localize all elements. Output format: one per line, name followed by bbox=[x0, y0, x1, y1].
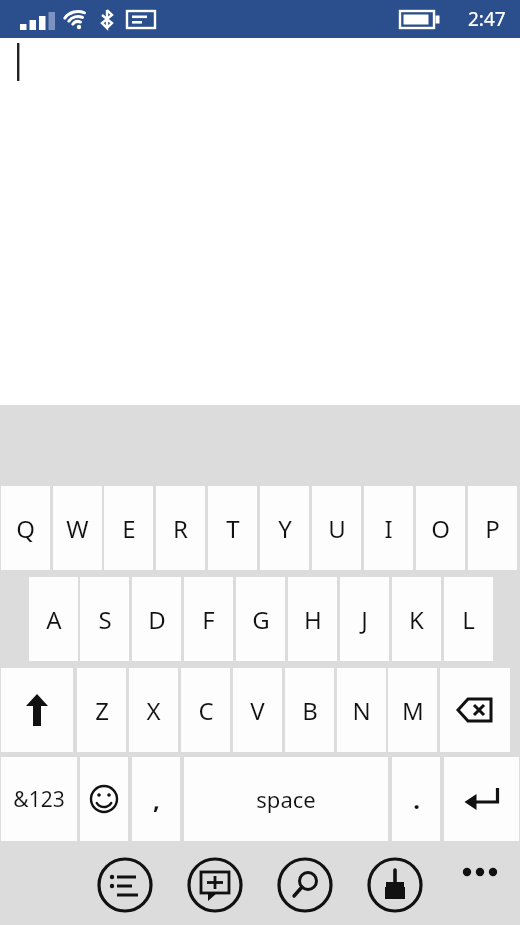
staticText: S bbox=[98, 603, 112, 636]
staticText: A bbox=[46, 603, 62, 636]
button[interactable]: C bbox=[181, 668, 230, 752]
staticText: space bbox=[256, 784, 316, 814]
button[interactable]: A bbox=[29, 577, 78, 661]
staticText: R bbox=[173, 512, 188, 545]
staticText: O bbox=[431, 512, 450, 545]
staticText: 2:47 bbox=[468, 6, 506, 32]
staticText: Z bbox=[95, 694, 109, 727]
button[interactable]: Backspace bbox=[440, 668, 510, 752]
staticText: N bbox=[352, 694, 371, 727]
staticText: Q bbox=[16, 512, 35, 545]
staticText: D bbox=[148, 603, 166, 636]
staticText: X bbox=[146, 694, 161, 727]
button[interactable]: M bbox=[388, 668, 437, 752]
button[interactable]: space bbox=[184, 757, 388, 841]
button[interactable]: R bbox=[156, 486, 205, 570]
button[interactable]: J bbox=[340, 577, 389, 661]
button[interactable]: B bbox=[285, 668, 334, 752]
button[interactable]: H bbox=[288, 577, 337, 661]
button[interactable]: S bbox=[80, 577, 129, 661]
button[interactable]: I bbox=[364, 486, 413, 570]
button[interactable]: X bbox=[129, 668, 178, 752]
button[interactable]: L bbox=[444, 577, 493, 661]
button[interactable]: Add word bbox=[187, 857, 243, 913]
button[interactable]: P bbox=[468, 486, 517, 570]
button[interactable]: More options bbox=[452, 857, 508, 913]
staticText: P bbox=[485, 512, 500, 545]
button[interactable]: Y bbox=[260, 486, 309, 570]
button[interactable]: N bbox=[337, 668, 386, 752]
staticText: B bbox=[302, 694, 318, 727]
button[interactable]: Q bbox=[1, 486, 50, 570]
staticText: I bbox=[384, 512, 393, 545]
staticText: . bbox=[413, 783, 420, 816]
staticText: M bbox=[402, 694, 424, 727]
staticText: W bbox=[66, 512, 89, 545]
button[interactable]: Search bbox=[277, 857, 333, 913]
button[interactable]: &123 bbox=[1, 757, 77, 841]
button[interactable]: F bbox=[184, 577, 233, 661]
staticText: T bbox=[226, 512, 240, 545]
button[interactable]: D bbox=[132, 577, 181, 661]
button[interactable]: U bbox=[312, 486, 361, 570]
staticText: E bbox=[122, 512, 136, 545]
button[interactable]: K bbox=[392, 577, 441, 661]
staticText: F bbox=[202, 603, 215, 636]
button[interactable]: O bbox=[416, 486, 465, 570]
button[interactable]: Shift bbox=[1, 668, 73, 752]
staticText: L bbox=[462, 603, 475, 636]
button[interactable]: Text suggestions bbox=[97, 857, 153, 913]
button[interactable]: W bbox=[53, 486, 102, 570]
button[interactable]: . bbox=[392, 757, 440, 841]
staticText: H bbox=[304, 603, 322, 636]
staticText: J bbox=[361, 603, 368, 636]
button[interactable] bbox=[0, 38, 520, 405]
button[interactable]: V bbox=[233, 668, 282, 752]
button[interactable]: Emoji bbox=[80, 757, 128, 841]
staticText: U bbox=[328, 512, 346, 545]
staticText: Y bbox=[278, 512, 292, 545]
button[interactable]: Theme bbox=[367, 857, 423, 913]
staticText: &123 bbox=[13, 785, 65, 814]
staticText: V bbox=[250, 694, 265, 727]
button[interactable]: Enter bbox=[444, 757, 519, 841]
button[interactable]: G bbox=[236, 577, 285, 661]
button[interactable]: Z bbox=[77, 668, 126, 752]
staticText: G bbox=[252, 603, 270, 636]
staticText: , bbox=[153, 783, 160, 816]
button[interactable]: T bbox=[208, 486, 257, 570]
staticText: K bbox=[409, 603, 424, 636]
button[interactable]: E bbox=[104, 486, 153, 570]
button[interactable]: , bbox=[132, 757, 180, 841]
staticText: C bbox=[198, 694, 214, 727]
